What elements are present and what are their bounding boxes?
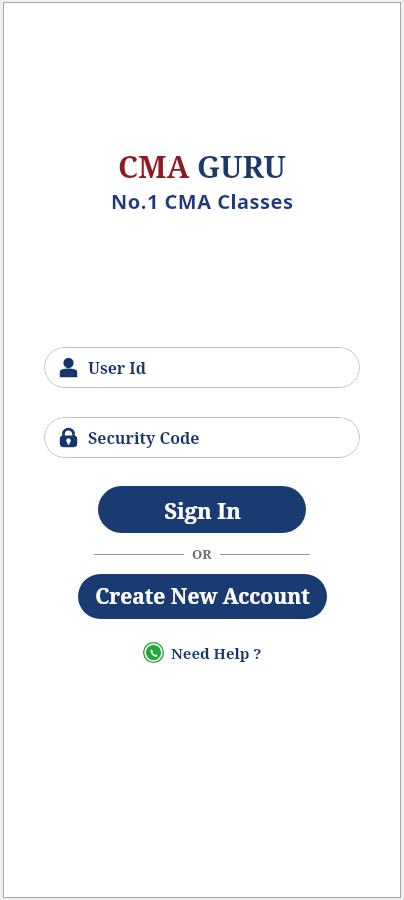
- button[interactable]: User Id: [44, 347, 360, 388]
- staticText: Need Help ?: [171, 643, 262, 663]
- button[interactable]: Security Code: [44, 417, 360, 458]
- staticText: Security Code: [88, 427, 200, 449]
- staticText: Sign In: [164, 495, 241, 525]
- button[interactable]: Create New Account: [78, 574, 327, 619]
- staticText: No.1 CMA Classes: [111, 188, 294, 215]
- button[interactable]: Sign In: [98, 486, 306, 533]
- staticText: OR: [192, 545, 212, 563]
- button[interactable]: Need Help on WhatsApp: [132, 637, 273, 668]
- staticText: User Id: [88, 357, 147, 379]
- staticText: CMA GURU: [118, 146, 286, 187]
- staticText: Create New Account: [95, 582, 310, 611]
